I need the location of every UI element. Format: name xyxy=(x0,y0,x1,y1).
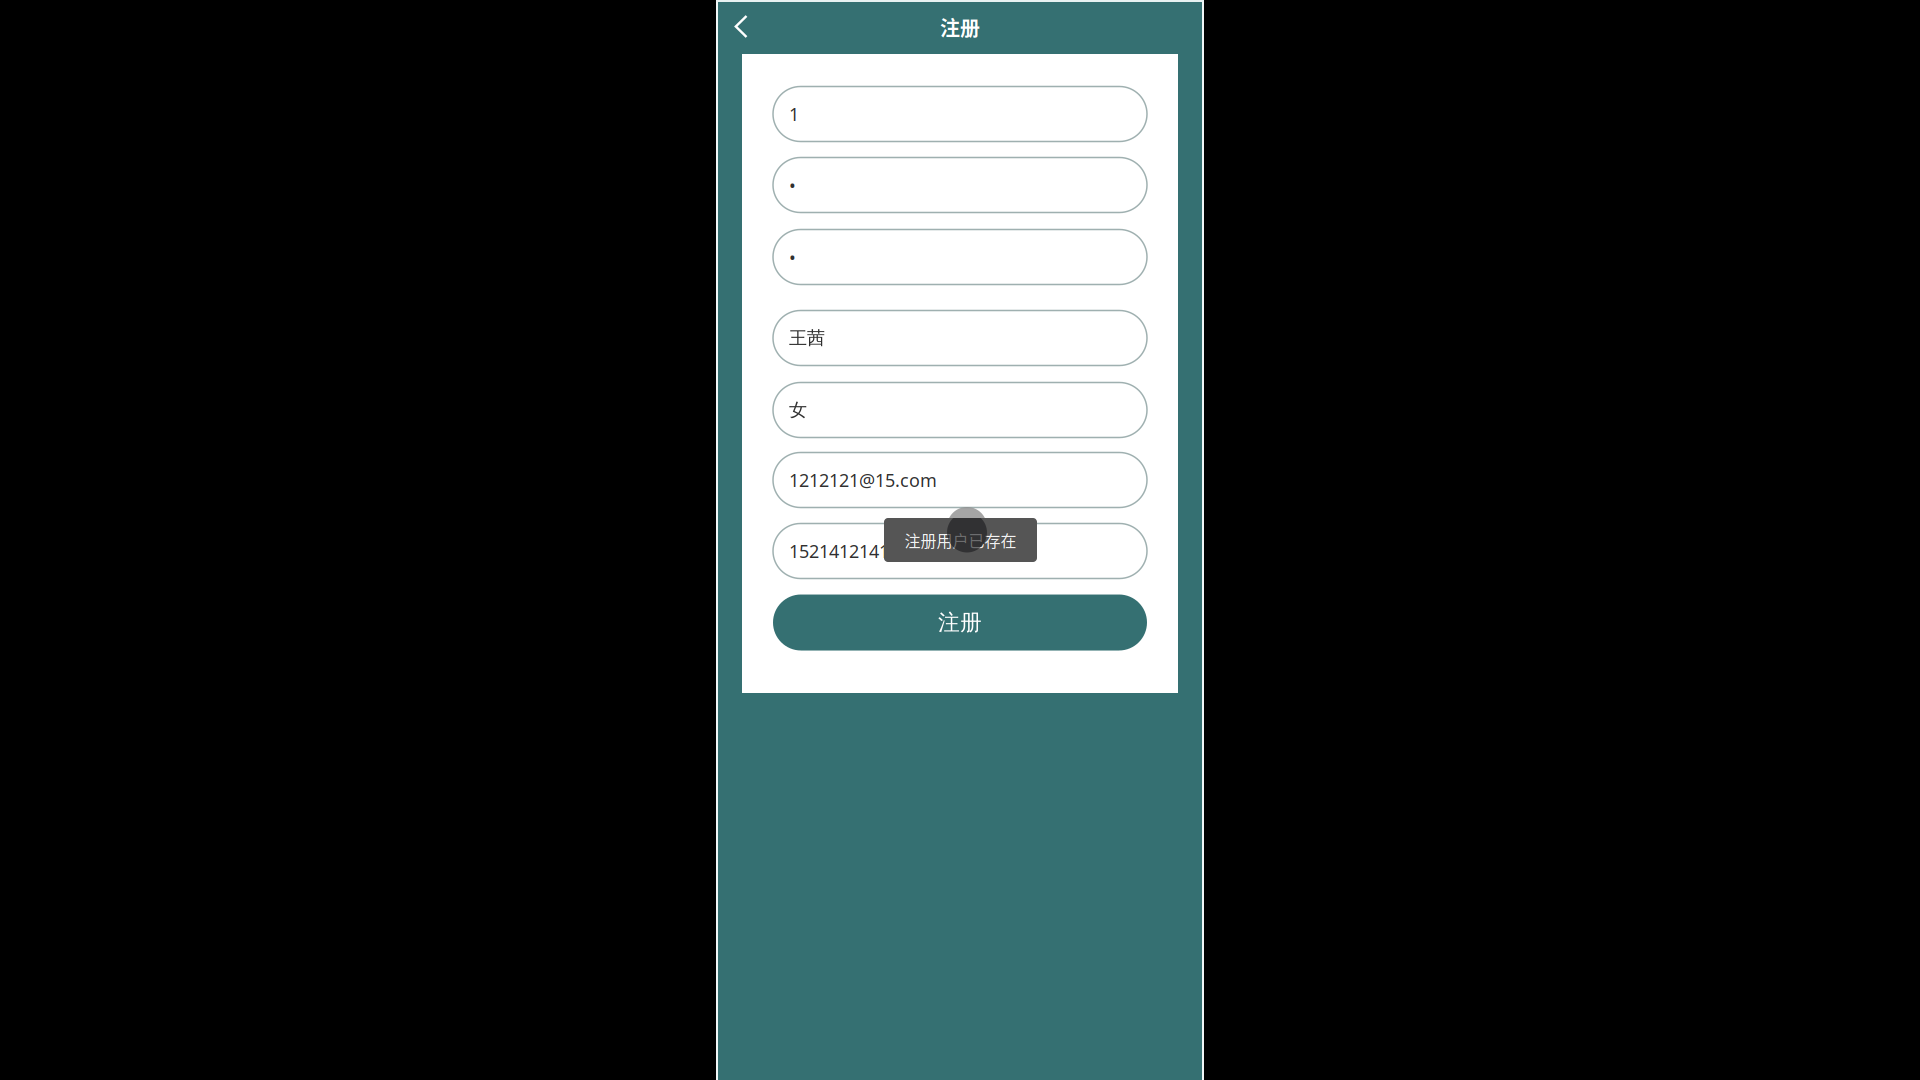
staticText: 王茜 xyxy=(789,327,825,349)
button[interactable]: 姓名 xyxy=(773,310,1147,365)
button[interactable]: 确认密码 xyxy=(773,229,1147,284)
staticText: 女 xyxy=(789,399,807,421)
staticText: • xyxy=(789,173,796,197)
button[interactable]: 返回 xyxy=(716,0,772,54)
button[interactable]: 手机号 xyxy=(773,523,1147,578)
button[interactable]: 邮箱 xyxy=(773,452,1147,507)
button[interactable]: 密码 xyxy=(773,157,1147,212)
button[interactable]: 用户名 xyxy=(773,86,1147,141)
staticText: 注册用户已存在 xyxy=(904,528,1016,552)
button[interactable]: 注册 xyxy=(773,594,1147,650)
staticText: 1212121@15.com xyxy=(789,468,937,492)
staticText: 15214121411 xyxy=(789,539,899,563)
staticText: 注册 xyxy=(940,12,980,41)
staticText: 注册 xyxy=(938,609,982,636)
button[interactable]: 性别 xyxy=(773,382,1147,437)
staticText: • xyxy=(789,245,796,269)
staticText: 1 xyxy=(789,102,799,126)
